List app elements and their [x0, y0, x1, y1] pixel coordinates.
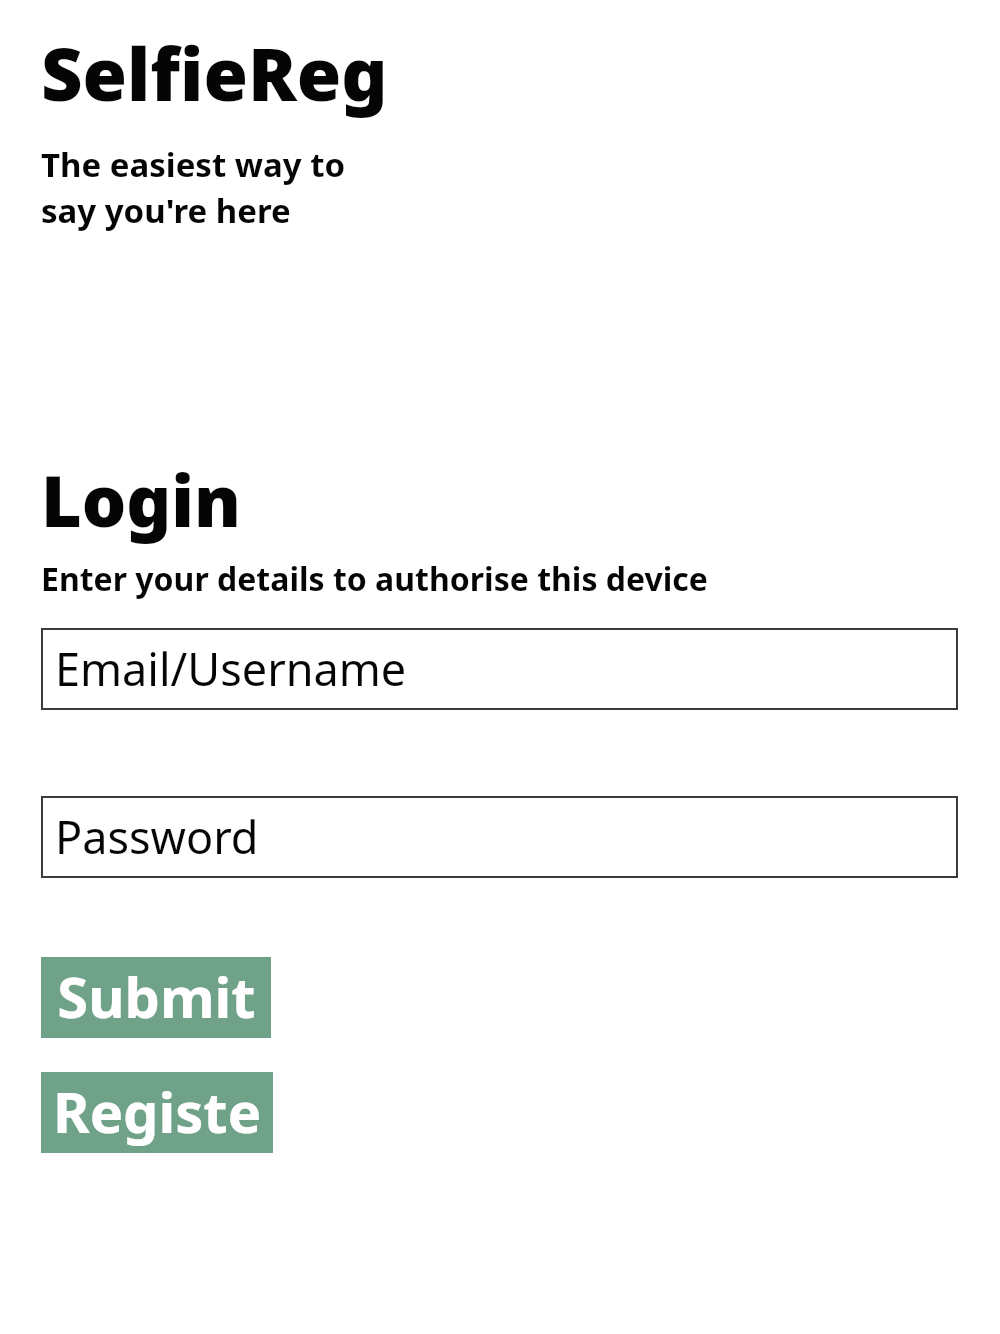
staticText: Submit [57, 958, 256, 1034]
staticText: The easiest way to say you're here [41, 142, 346, 233]
button[interactable]: Submit [41, 957, 271, 1038]
button[interactable]: Password [41, 796, 958, 878]
button[interactable]: Register [41, 1072, 273, 1153]
staticText: Password [55, 806, 259, 867]
staticText: Email/Username [55, 638, 407, 699]
staticText: Login [41, 452, 241, 547]
staticText: Register [41, 1073, 273, 1149]
staticText: Enter your details to authorise this dev… [41, 557, 708, 601]
button[interactable]: Email/Username [41, 628, 958, 710]
staticText: SelfieReg [41, 24, 388, 122]
